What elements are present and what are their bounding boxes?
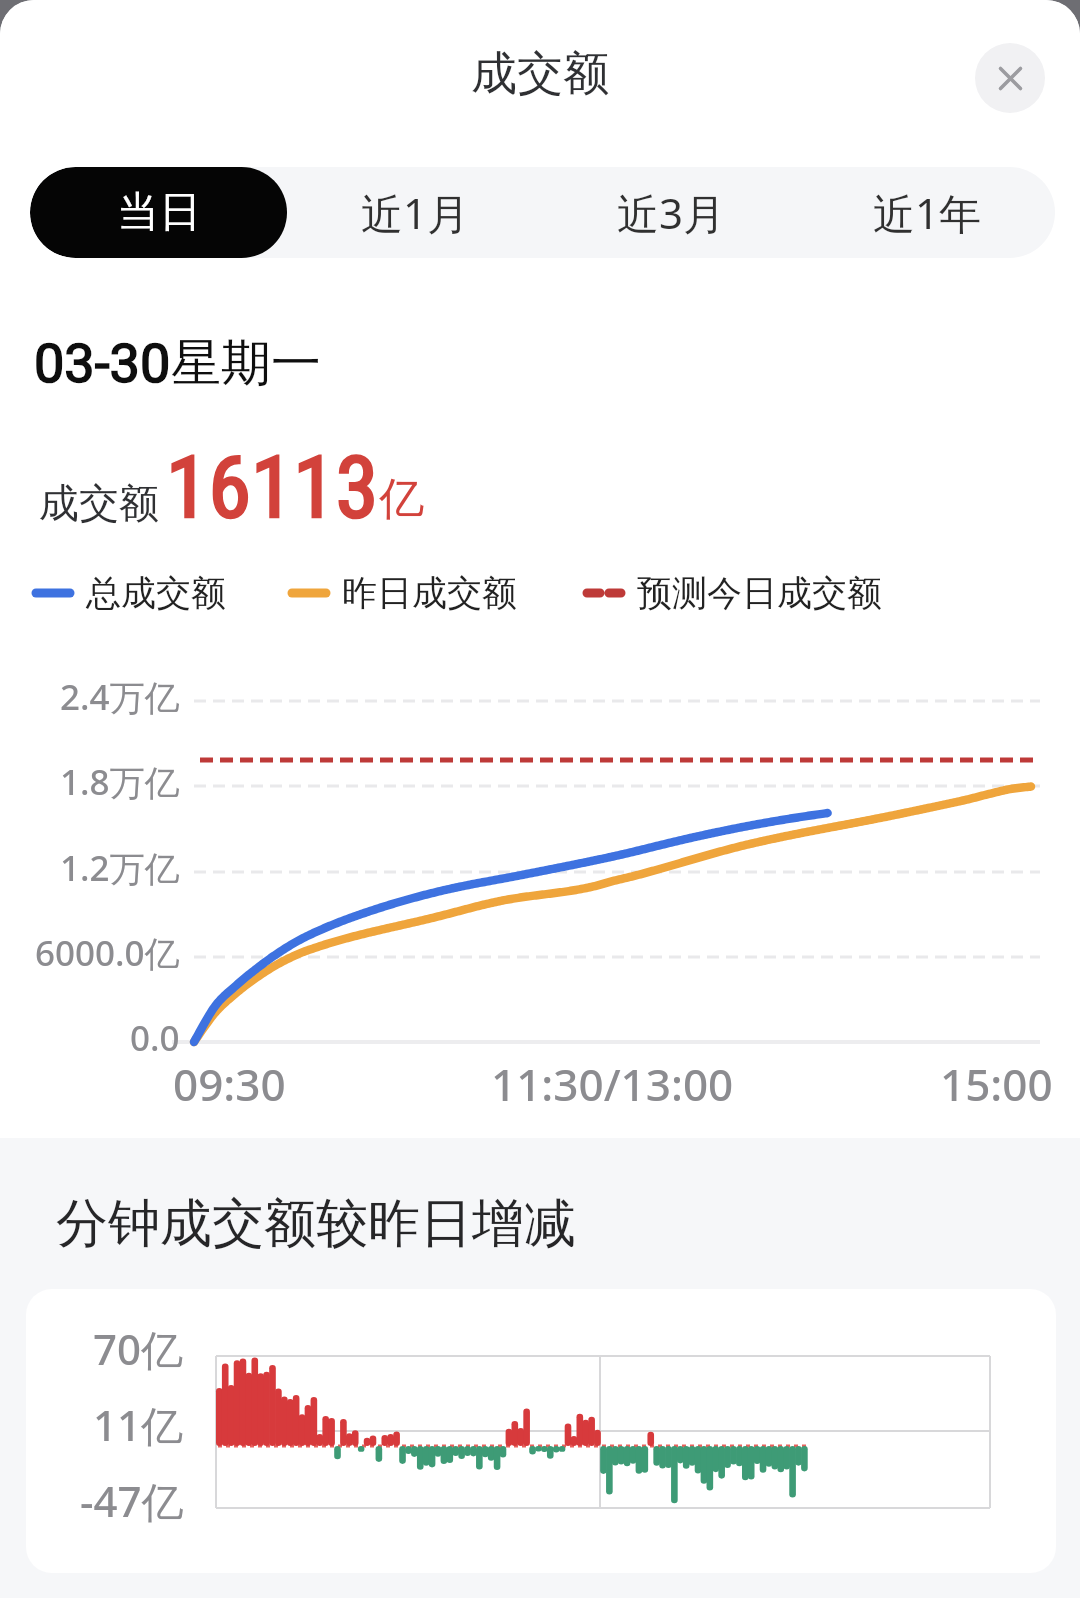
button[interactable]: 近1年 [799,167,1055,258]
staticText: 近1年 [873,184,982,241]
staticText: 近3月 [617,184,726,241]
staticText: 15:00 [940,1054,1053,1114]
staticText: 昨日成交额 [342,571,517,615]
staticText: 6000.0亿 [35,929,180,977]
button[interactable]: 近3月 [543,167,799,258]
button[interactable]: 当日 [30,167,287,258]
staticText: 1.2万亿 [60,844,180,892]
button[interactable]: Close [975,43,1045,113]
staticText: 16113 [166,437,379,538]
staticText: 近1月 [361,184,470,241]
staticText: 星期一 [171,332,321,395]
staticText: 亿 [379,471,424,528]
staticText: 成交额 [471,45,609,103]
button[interactable]: 近1月 [287,167,543,258]
staticText: -47亿 [80,1472,184,1529]
staticText: 1.8万亿 [60,758,180,806]
staticText: 分钟成交额较昨日增减 [56,1191,576,1257]
staticText: 成交额 [39,478,159,528]
staticText: 预测今日成交额 [637,571,882,615]
staticText: 03-30 [34,332,171,395]
staticText: 09:30 [173,1054,286,1114]
staticText: 11亿 [93,1396,184,1453]
staticText: 2.4万亿 [60,673,180,721]
staticText: 11:30/13:00 [491,1054,734,1114]
staticText: 总成交额 [86,571,226,615]
staticText: 0.0 [130,1014,180,1062]
staticText: 70亿 [93,1320,184,1377]
staticText: 当日 [117,186,201,239]
